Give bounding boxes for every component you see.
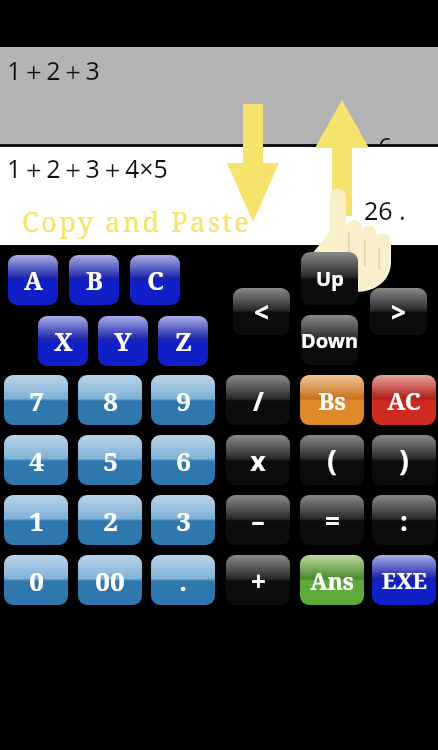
staticText: :: [400, 503, 408, 538]
button[interactable]: 3: [151, 495, 215, 545]
button[interactable]: >: [370, 288, 427, 335]
staticText: 7: [29, 383, 44, 418]
button[interactable]: x: [226, 435, 290, 485]
button[interactable]: (: [300, 435, 364, 485]
button[interactable]: 4: [4, 435, 68, 485]
staticText: X: [54, 324, 73, 358]
button[interactable]: ): [372, 435, 436, 485]
staticText: ): [399, 441, 409, 479]
button[interactable]: C: [130, 255, 180, 305]
staticText: 9: [176, 383, 191, 418]
staticText: –: [251, 503, 265, 538]
staticText: 4: [29, 443, 44, 478]
staticText: 8: [103, 383, 118, 418]
staticText: 6: [176, 443, 191, 478]
button[interactable]: 5: [78, 435, 142, 485]
button[interactable]: 7: [4, 375, 68, 425]
staticText: B: [86, 263, 103, 297]
staticText: 3: [176, 503, 191, 538]
staticText: A: [24, 263, 43, 297]
staticText: Up: [316, 265, 344, 292]
staticText: 1＋2＋3＋4×5: [7, 151, 168, 185]
button[interactable]: <: [233, 288, 290, 335]
staticText: (: [327, 441, 337, 479]
button[interactable]: Up: [301, 252, 358, 305]
button[interactable]: 00: [78, 555, 142, 605]
button[interactable]: 0: [4, 555, 68, 605]
staticText: 0: [29, 563, 44, 598]
button[interactable]: .: [151, 555, 215, 605]
staticText: Z: [175, 324, 192, 358]
staticText: C: [147, 263, 164, 297]
button[interactable]: –: [226, 495, 290, 545]
button[interactable]: +: [226, 555, 290, 605]
staticText: EXE: [382, 565, 427, 595]
button[interactable]: 1＋2＋3: [0, 47, 438, 144]
button[interactable]: AC: [372, 375, 436, 425]
staticText: 00: [95, 563, 125, 598]
button[interactable]: 2: [78, 495, 142, 545]
button[interactable]: Ans: [300, 555, 364, 605]
button[interactable]: X: [38, 316, 88, 366]
staticText: AC: [387, 384, 421, 417]
staticText: 26 .: [364, 193, 406, 227]
staticText: Down: [301, 327, 358, 354]
staticText: 1＋2＋3: [7, 53, 100, 87]
button[interactable]: Z: [158, 316, 208, 366]
staticText: Ans: [310, 565, 354, 596]
staticText: =: [325, 503, 340, 538]
button[interactable]: Down: [301, 315, 358, 365]
button[interactable]: B: [69, 255, 119, 305]
staticText: 6 .: [378, 129, 406, 163]
staticText: /: [253, 383, 264, 418]
staticText: Bs: [318, 384, 346, 417]
button[interactable]: 8: [78, 375, 142, 425]
staticText: +: [251, 563, 266, 598]
button[interactable]: A: [8, 255, 58, 305]
button[interactable]: 1: [4, 495, 68, 545]
button[interactable]: Bs: [300, 375, 364, 425]
button[interactable]: /: [226, 375, 290, 425]
staticText: <: [254, 294, 269, 329]
staticText: 5: [103, 443, 118, 478]
staticText: Copy and Paste: [22, 203, 252, 240]
button[interactable]: 9: [151, 375, 215, 425]
button[interactable]: =: [300, 495, 364, 545]
button[interactable]: EXE: [372, 555, 436, 605]
staticText: 1: [29, 503, 44, 538]
button[interactable]: :: [372, 495, 436, 545]
staticText: 2: [103, 503, 118, 538]
staticText: >: [391, 294, 406, 329]
staticText: x: [250, 443, 266, 478]
button[interactable]: 6: [151, 435, 215, 485]
staticText: Y: [114, 324, 132, 358]
staticText: .: [179, 563, 187, 598]
button[interactable]: 1＋2＋3＋4×5: [0, 147, 438, 245]
button[interactable]: Y: [98, 316, 148, 366]
